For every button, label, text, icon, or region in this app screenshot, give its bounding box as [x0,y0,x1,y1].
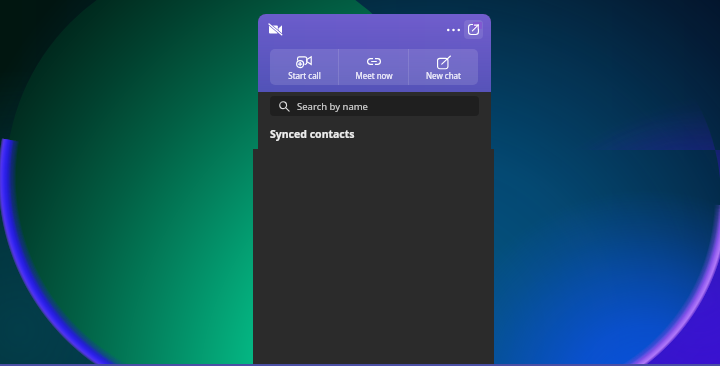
staticText: New chat [426,70,461,81]
staticText: Synced contacts [270,127,355,141]
button[interactable]: Meet now [339,49,408,85]
staticText: Search by name [297,100,368,113]
button[interactable]: New chat [409,49,478,85]
staticText: Meet now [355,70,393,81]
staticText: Start call [288,70,321,81]
button[interactable]: Start call [270,49,338,85]
button[interactable]: Search by name [270,96,479,116]
button[interactable]: More options [443,20,463,40]
button[interactable]: Open in new window [464,20,483,39]
